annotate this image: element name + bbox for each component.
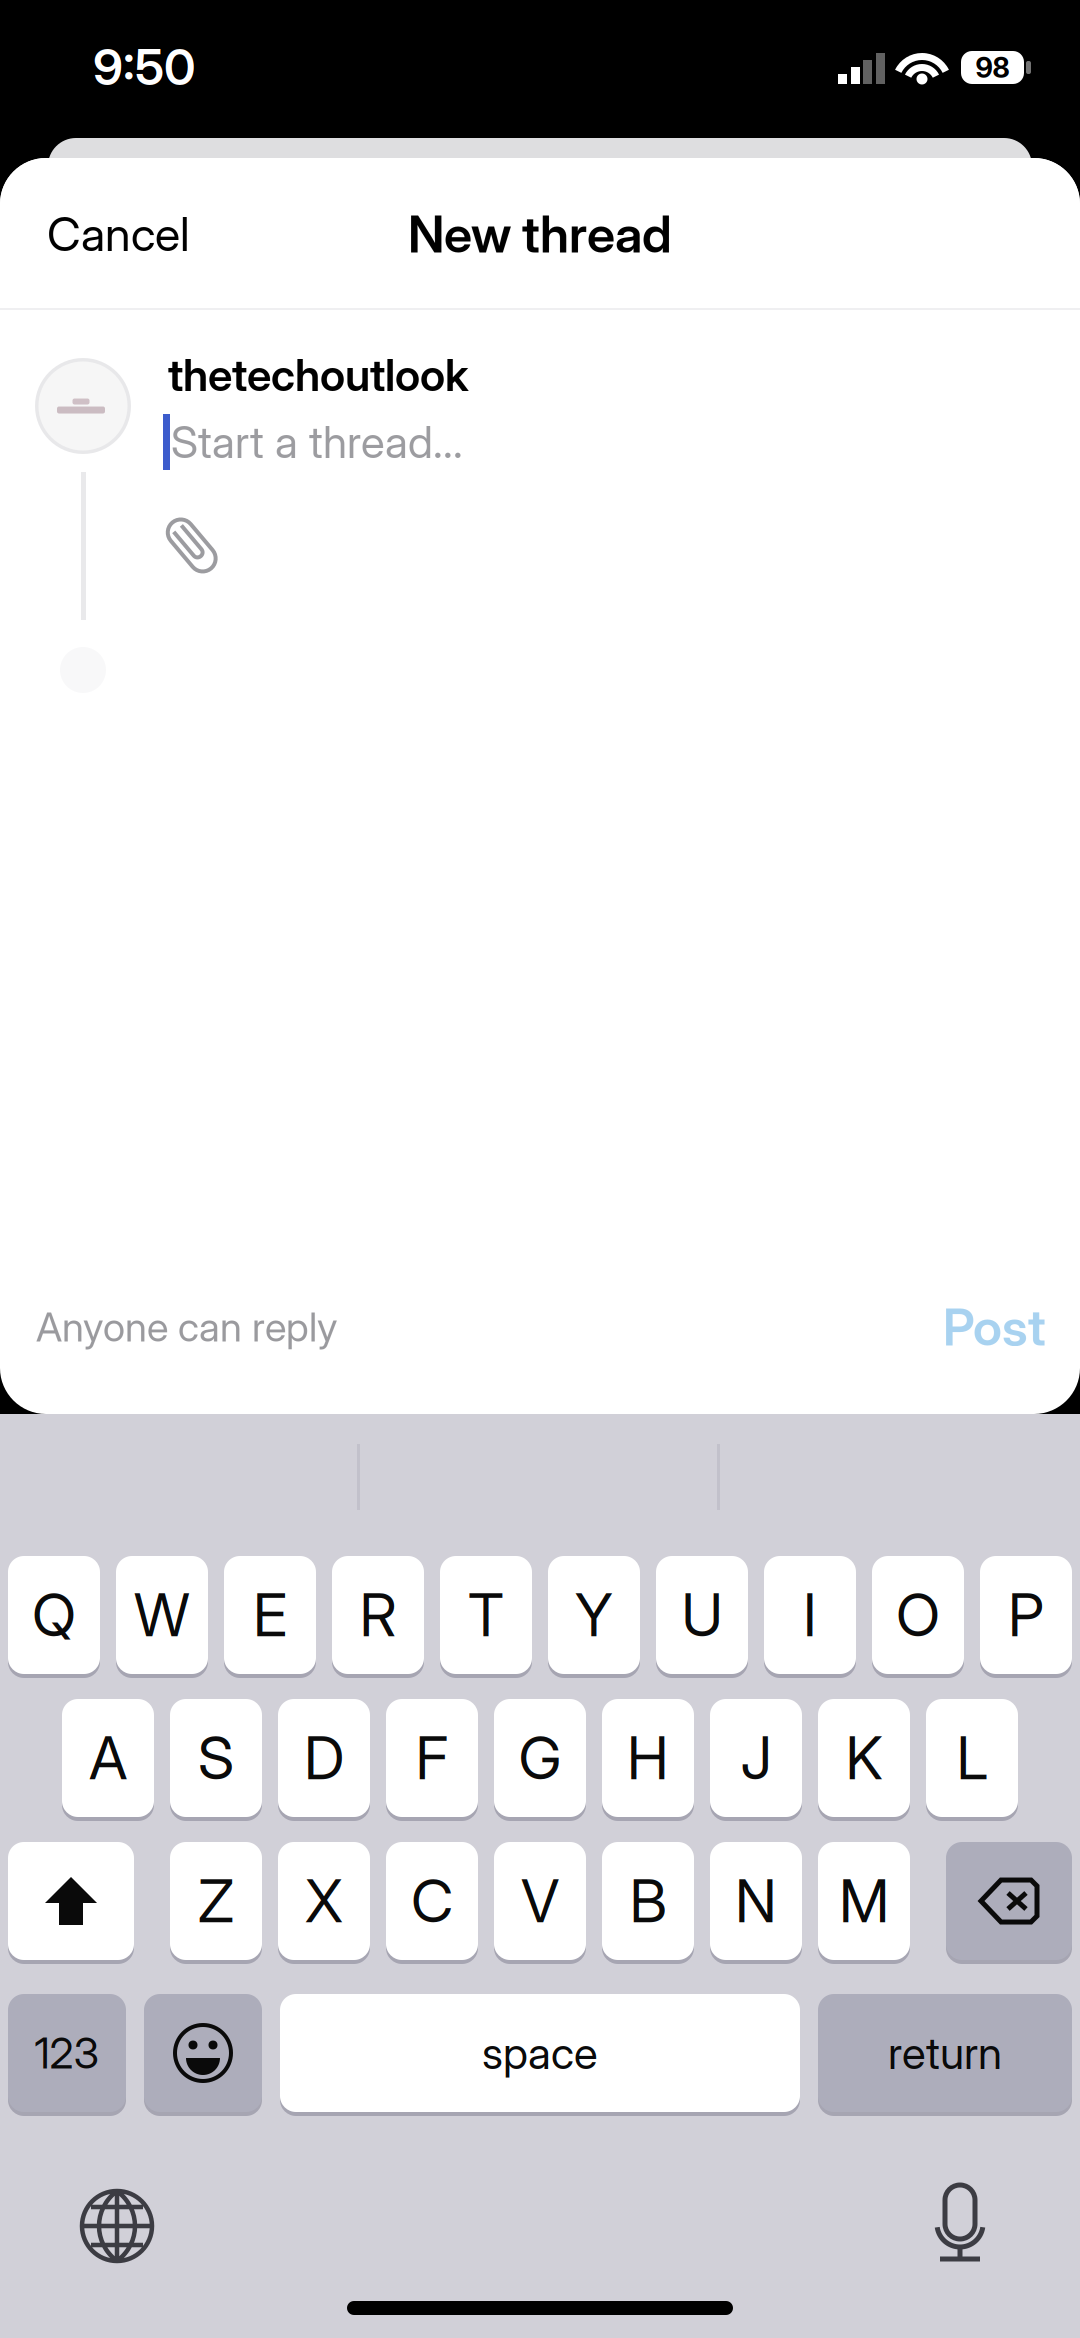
button[interactable]: Attach media bbox=[163, 512, 223, 582]
staticText: space bbox=[482, 2026, 598, 2080]
staticText: C bbox=[411, 1865, 453, 1936]
button[interactable]: C bbox=[386, 1840, 478, 1962]
button[interactable]: O bbox=[872, 1554, 964, 1676]
staticText: Post bbox=[943, 1296, 1046, 1358]
button[interactable]: space bbox=[280, 1992, 800, 2114]
staticText: Y bbox=[575, 1579, 613, 1650]
staticText: A bbox=[89, 1722, 127, 1793]
button[interactable]: G bbox=[494, 1697, 586, 1819]
button[interactable]: Y bbox=[548, 1554, 640, 1676]
button[interactable]: Dictate bbox=[929, 2184, 991, 2264]
button[interactable]: T bbox=[440, 1554, 532, 1676]
button[interactable]: Q bbox=[8, 1554, 100, 1676]
staticText: S bbox=[198, 1722, 234, 1793]
button[interactable]: 123 bbox=[8, 1992, 126, 2114]
staticText: D bbox=[304, 1722, 344, 1793]
staticText: L bbox=[956, 1722, 987, 1793]
staticText: B bbox=[629, 1865, 666, 1936]
button[interactable]: Anyone can reply bbox=[0, 1277, 337, 1377]
staticText: W bbox=[134, 1579, 190, 1650]
staticText: return bbox=[888, 2026, 1002, 2080]
button[interactable]: R bbox=[332, 1554, 424, 1676]
staticText: I bbox=[803, 1579, 817, 1650]
staticText: Cancel bbox=[47, 206, 190, 262]
button[interactable]: N bbox=[710, 1840, 802, 1962]
staticText: 123 bbox=[34, 2027, 99, 2079]
staticText: V bbox=[521, 1865, 559, 1936]
button[interactable]: Emoji bbox=[144, 1992, 262, 2114]
button[interactable]: V bbox=[494, 1840, 586, 1962]
button[interactable]: P bbox=[980, 1554, 1072, 1676]
staticText: New thread bbox=[408, 203, 672, 265]
button[interactable]: W bbox=[116, 1554, 208, 1676]
staticText: 98 bbox=[975, 51, 1009, 84]
button[interactable]: Switch keyboard bbox=[80, 2189, 154, 2263]
staticText: R bbox=[359, 1579, 396, 1650]
button[interactable]: Delete bbox=[946, 1840, 1072, 1962]
button[interactable]: M bbox=[818, 1840, 910, 1962]
button[interactable]: K bbox=[818, 1697, 910, 1819]
button[interactable]: Cancel bbox=[0, 169, 247, 299]
staticText: J bbox=[740, 1722, 771, 1793]
staticText: N bbox=[735, 1865, 777, 1936]
staticText: Q bbox=[32, 1579, 76, 1650]
staticText: Anyone can reply bbox=[36, 1303, 337, 1351]
button[interactable]: Shift bbox=[8, 1840, 134, 1962]
button[interactable]: A bbox=[62, 1697, 154, 1819]
staticText: M bbox=[839, 1865, 889, 1936]
staticText: T bbox=[468, 1579, 504, 1650]
staticText: F bbox=[415, 1722, 448, 1793]
staticText: Z bbox=[198, 1865, 234, 1936]
button[interactable]: H bbox=[602, 1697, 694, 1819]
button[interactable]: L bbox=[926, 1697, 1018, 1819]
staticText: H bbox=[627, 1722, 669, 1793]
button[interactable]: I bbox=[764, 1554, 856, 1676]
staticText: X bbox=[305, 1865, 343, 1936]
staticText: E bbox=[253, 1579, 287, 1650]
staticText: 9:50 bbox=[93, 37, 195, 97]
staticText: U bbox=[681, 1579, 722, 1650]
staticText: K bbox=[845, 1722, 882, 1793]
button[interactable]: E bbox=[224, 1554, 316, 1676]
button[interactable]: S bbox=[170, 1697, 262, 1819]
button[interactable]: return bbox=[818, 1992, 1072, 2114]
button[interactable]: Z bbox=[170, 1840, 262, 1962]
staticText: thetechoutlook bbox=[168, 348, 469, 402]
staticText: O bbox=[896, 1579, 940, 1650]
button[interactable]: U bbox=[656, 1554, 748, 1676]
button[interactable]: Post bbox=[943, 1277, 1080, 1377]
button[interactable]: D bbox=[278, 1697, 370, 1819]
button[interactable]: X bbox=[278, 1840, 370, 1962]
button[interactable]: F bbox=[386, 1697, 478, 1819]
staticText: Start a thread... bbox=[171, 415, 463, 469]
staticText: G bbox=[518, 1722, 561, 1793]
button[interactable]: J bbox=[710, 1697, 802, 1819]
button[interactable]: B bbox=[602, 1840, 694, 1962]
staticText: P bbox=[1008, 1579, 1044, 1650]
